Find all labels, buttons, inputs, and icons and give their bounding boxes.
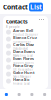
staticText: List	[30, 3, 42, 11]
button[interactable]: Tab	[38, 89, 51, 100]
staticText: Contact	[3, 3, 28, 11]
staticText: Finance Lead	[13, 82, 30, 85]
button[interactable]: Dana Evans	[3, 50, 48, 57]
button[interactable]: Tab	[25, 89, 38, 100]
staticText: Evan Flores	[13, 56, 34, 61]
button[interactable]: More options	[38, 18, 45, 21]
staticText: Support Agent	[13, 61, 34, 64]
staticText: Product Designer	[13, 33, 38, 36]
staticText: Sales Manager	[13, 75, 31, 78]
button[interactable]: Hana Ito	[3, 78, 48, 85]
button[interactable]: Bianca Cruz	[3, 36, 48, 43]
staticText: Contacts	[6, 18, 28, 25]
staticText: Bianca Cruz	[13, 35, 37, 40]
button[interactable]: Gabe Hunt	[3, 71, 48, 78]
staticText: Dana Evans	[13, 49, 35, 54]
staticText: Fiona Gray	[13, 63, 33, 68]
button[interactable]: Fiona Gray	[3, 64, 48, 71]
staticText: 8 people	[6, 25, 20, 29]
staticText: Data Analyst	[13, 47, 28, 50]
staticText: iOS Engineer	[13, 40, 31, 43]
button[interactable]: Tab	[0, 89, 13, 100]
button[interactable]: Aaron Bell	[3, 29, 48, 36]
staticText: UX Researcher	[13, 68, 33, 71]
button[interactable]: Carlos Diaz	[3, 43, 48, 50]
staticText: Carlos Diaz	[13, 42, 34, 47]
button[interactable]: Evan Flores	[3, 57, 48, 64]
staticText: Marketing Lead	[13, 54, 33, 57]
button[interactable]: Tab	[13, 89, 26, 100]
staticText: Hana Ito	[13, 77, 29, 82]
staticText: Gabe Hunt	[13, 70, 35, 75]
staticText: Aaron Bell	[13, 28, 33, 33]
